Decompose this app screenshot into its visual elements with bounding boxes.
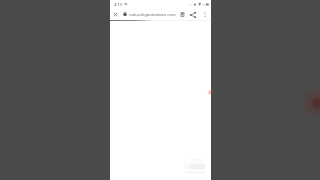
button[interactable]: Close (111, 10, 120, 19)
staticText: 4:13 (114, 2, 122, 7)
button[interactable]: Share (188, 10, 197, 19)
button[interactable]: More options (200, 10, 209, 19)
staticText: nukuokgaotaobao.com (129, 11, 176, 17)
button[interactable]: Save page (178, 10, 187, 19)
